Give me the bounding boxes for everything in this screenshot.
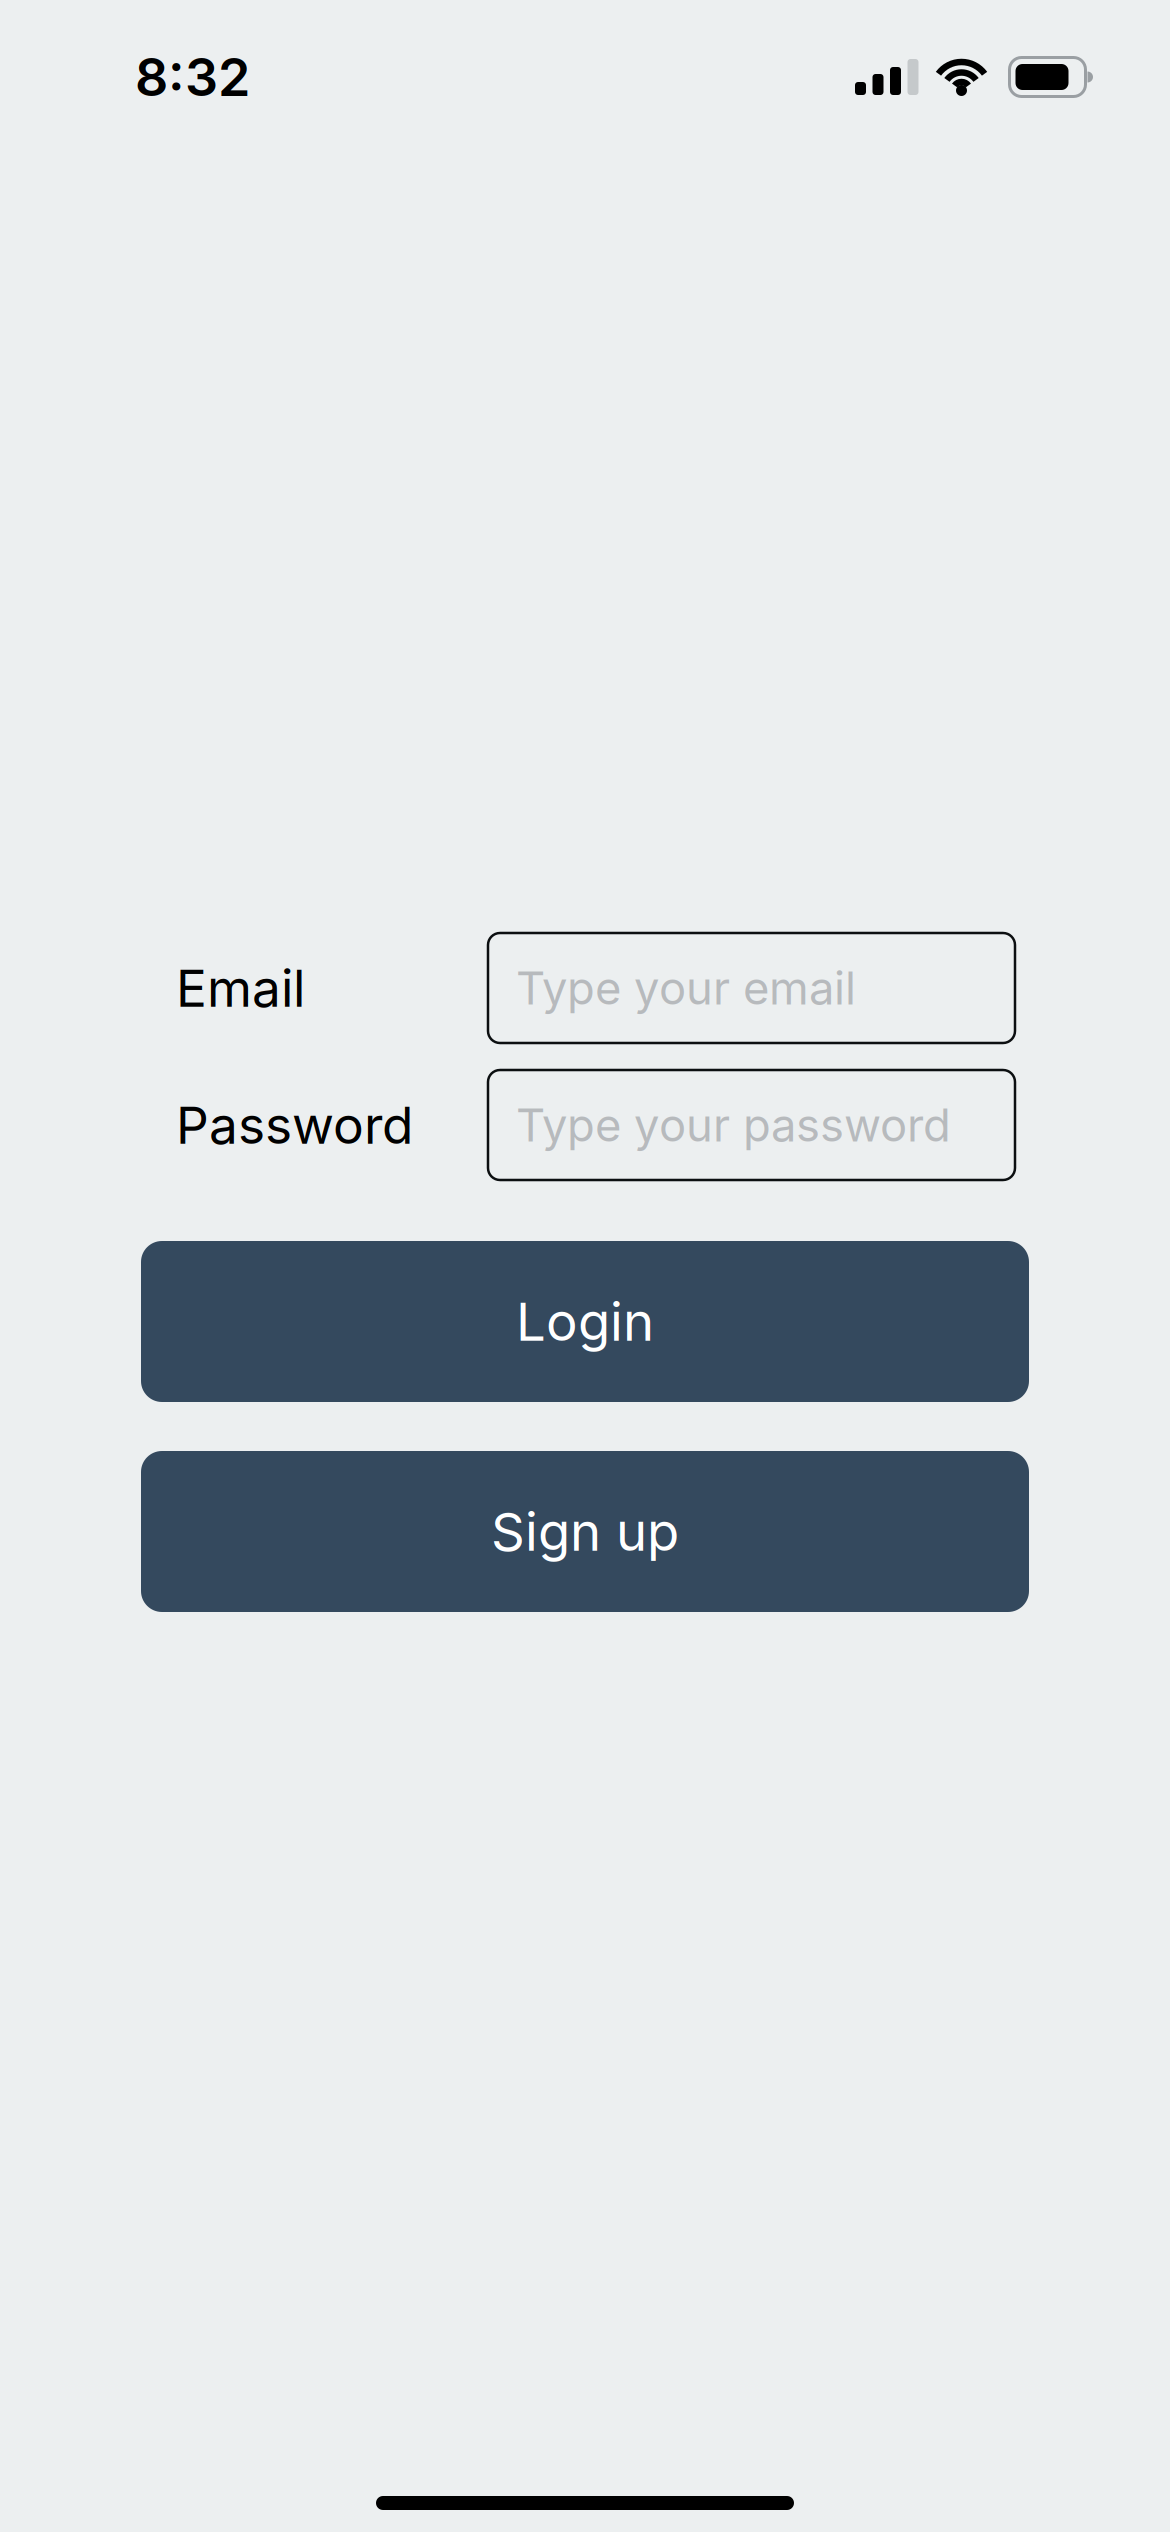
button[interactable]: Type your email	[488, 933, 1015, 1043]
button[interactable]: Sign up	[141, 1451, 1029, 1612]
staticText: Sign up	[491, 1500, 679, 1563]
staticText: 8:32	[135, 45, 250, 108]
button[interactable]: Login	[141, 1241, 1029, 1402]
staticText: Login	[516, 1290, 654, 1353]
staticText: Type your password	[516, 1098, 951, 1152]
staticText: Password	[176, 1094, 413, 1156]
button[interactable]: Type your password	[488, 1070, 1015, 1180]
staticText: Type your email	[516, 961, 856, 1015]
staticText: Email	[176, 957, 305, 1019]
